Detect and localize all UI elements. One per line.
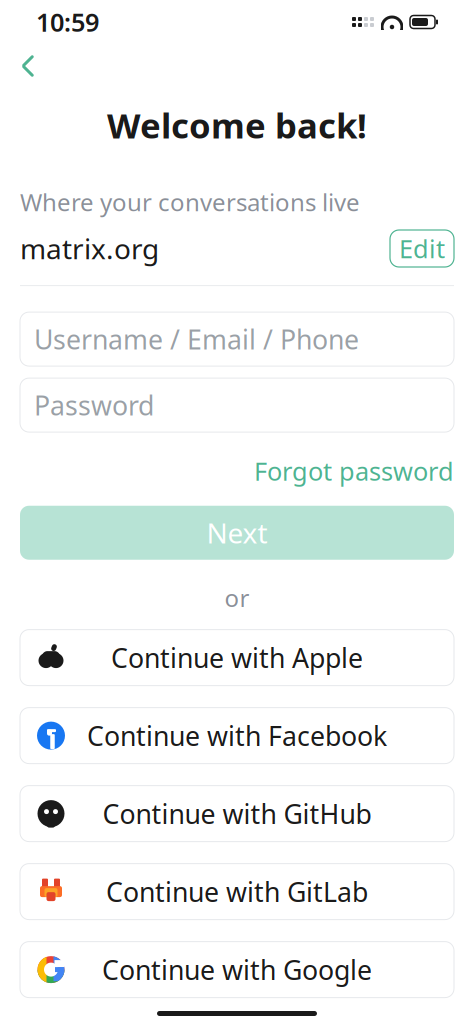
staticText: Continue with GitLab [106, 874, 368, 909]
staticText: Continue with Google [102, 952, 372, 987]
button[interactable]: Next [20, 506, 454, 560]
staticText: Password [34, 387, 154, 423]
staticText: matrix.org [20, 230, 159, 267]
staticText: Username / Email / Phone [34, 321, 359, 357]
button[interactable]: Back [8, 46, 48, 86]
staticText: Next [206, 514, 267, 551]
staticText: Where your conversations live [20, 186, 360, 218]
button[interactable]: Continue with GitLab [20, 864, 454, 920]
staticText: Welcome back! [107, 102, 367, 148]
button[interactable]: Forgot password [254, 450, 454, 492]
button[interactable]: Continue with Apple [20, 630, 454, 686]
button[interactable]: Continue with Facebook [20, 708, 454, 764]
staticText: Continue with GitHub [102, 796, 371, 831]
button[interactable]: Continue with GitHub [20, 786, 454, 842]
staticText: Continue with Facebook [87, 718, 387, 753]
button[interactable]: Edit [390, 230, 454, 267]
button[interactable]: Continue with Google [20, 942, 454, 998]
staticText: Edit [399, 232, 445, 265]
staticText: Forgot password [254, 454, 454, 488]
staticText: Continue with Apple [111, 640, 363, 675]
staticText: or [224, 582, 249, 614]
staticText: 10:59 [36, 5, 99, 39]
